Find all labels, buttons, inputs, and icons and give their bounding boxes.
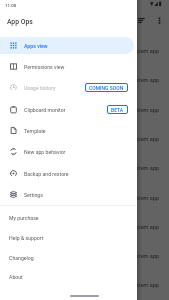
staticText: New app behavior: [24, 149, 66, 155]
staticText: BETA: [111, 107, 124, 113]
staticText: stem app: [136, 77, 159, 83]
button[interactable]: Permissions view: [0, 58, 134, 75]
button[interactable]: Help & support: [0, 228, 137, 247]
button[interactable]: Template: [0, 122, 134, 139]
staticText: Template: [24, 128, 46, 134]
staticText: stem app: [136, 253, 159, 259]
staticText: COMING SOON: [89, 85, 124, 91]
staticText: Settings: [24, 192, 43, 198]
button[interactable]: Clipboard monitor: [0, 101, 134, 118]
staticText: stem app: [136, 136, 159, 142]
button[interactable]: Apps view: [0, 37, 134, 54]
staticText: stem app: [136, 165, 159, 171]
staticText: 11:00: [5, 3, 17, 8]
button[interactable]: Changelog: [0, 248, 137, 267]
staticText: Changelog: [9, 255, 34, 261]
button[interactable]: Sort: [137, 16, 146, 25]
staticText: stem app: [136, 282, 159, 288]
button[interactable]: More options: [155, 16, 164, 25]
staticText: stem app: [136, 224, 159, 230]
staticText: Apps view: [24, 43, 48, 49]
staticText: Backup and restore: [24, 171, 69, 177]
button[interactable]: Backup and restore: [0, 165, 134, 182]
button[interactable]: My purchase: [0, 208, 137, 227]
staticText: stem app: [136, 107, 159, 113]
staticText: About: [9, 274, 23, 280]
staticText: Usage history: [24, 85, 56, 91]
staticText: stem app: [136, 48, 159, 54]
staticText: stem app: [136, 195, 159, 201]
button[interactable]: Settings: [0, 186, 134, 203]
staticText: My purchase: [9, 215, 39, 221]
staticText: Permissions view: [24, 64, 65, 70]
button[interactable]: About: [0, 267, 137, 286]
button[interactable]: New app behavior: [0, 143, 134, 160]
staticText: App Ops: [7, 18, 33, 26]
staticText: Clipboard monitor: [24, 107, 66, 113]
staticText: Help & support: [9, 235, 44, 241]
button[interactable]: Usage history: [0, 79, 134, 96]
